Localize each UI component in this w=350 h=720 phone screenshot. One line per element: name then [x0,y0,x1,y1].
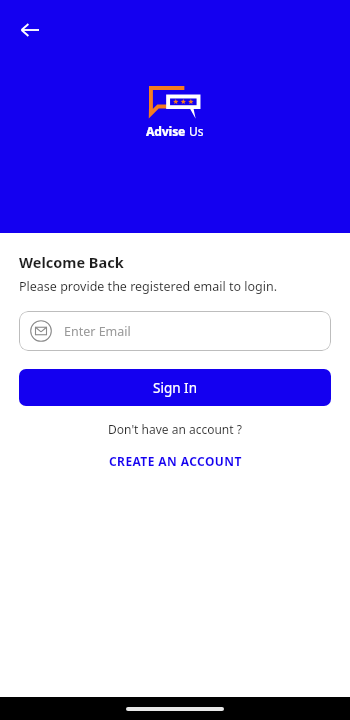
button[interactable]: CREATE AN ACCOUNT [101,450,250,472]
staticText: Don't have an account ? [108,421,242,437]
staticText: Please provide the registered email to l… [19,278,278,295]
button[interactable]: Sign In [19,369,331,406]
staticText: Advise [146,123,186,139]
button[interactable]: Back [14,14,46,46]
staticText: Welcome Back [19,252,124,272]
staticText: Sign In [153,379,197,397]
staticText: Us [189,123,204,139]
staticText: Enter Email [64,323,131,340]
staticText: CREATE AN ACCOUNT [109,453,242,469]
button[interactable]: Enter Email [19,311,331,351]
